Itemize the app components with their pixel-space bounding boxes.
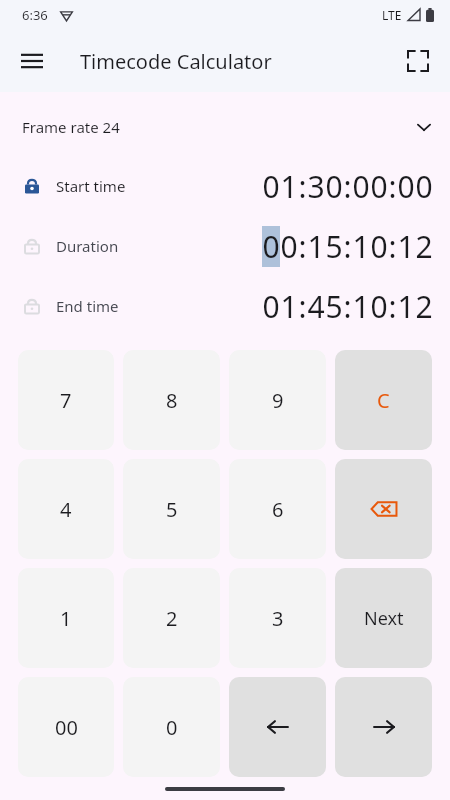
staticText: 0	[370, 286, 388, 327]
staticText: 0	[262, 226, 280, 267]
button[interactable]: 00	[18, 677, 114, 777]
staticText: :	[298, 226, 307, 267]
staticText: :	[343, 286, 352, 327]
staticText: 5	[325, 226, 343, 267]
staticText: 9	[272, 387, 284, 414]
staticText: Start time	[56, 176, 126, 196]
staticText: 0	[415, 166, 433, 207]
staticText: LTE	[382, 7, 402, 23]
staticText: :	[298, 286, 307, 327]
staticText: 1	[307, 226, 325, 267]
staticText: Frame rate 24	[22, 117, 120, 137]
staticText: 0	[397, 166, 415, 207]
staticText: 6	[272, 496, 284, 523]
button[interactable]: 8	[123, 350, 220, 450]
staticText: :	[343, 166, 352, 207]
staticText: 1	[352, 286, 370, 327]
staticText: 1	[60, 605, 72, 632]
button[interactable]: 3	[229, 568, 326, 668]
staticText: Timecode Calculator	[80, 48, 272, 75]
staticText: 5	[325, 286, 343, 327]
button[interactable]: Fullscreen	[394, 37, 442, 85]
button[interactable]: 4	[18, 459, 114, 559]
staticText: 2	[166, 605, 178, 632]
button[interactable]: Backspace	[335, 459, 432, 559]
staticText: 6:36	[22, 6, 48, 24]
button[interactable]: 1	[18, 568, 114, 668]
button[interactable]: Frame rate 24	[0, 110, 450, 144]
staticText: 0	[166, 714, 178, 741]
button[interactable]: Previous field	[229, 677, 326, 777]
button[interactable]: 9	[229, 350, 326, 450]
button[interactable]: Unlocked	[0, 216, 450, 276]
staticText: 5	[166, 496, 178, 523]
staticText: 0	[370, 166, 388, 207]
button[interactable]: 6	[229, 459, 326, 559]
button[interactable]: Menu	[8, 37, 56, 85]
staticText: 1	[397, 286, 415, 327]
staticText: 0	[262, 166, 280, 207]
staticText: 3	[272, 605, 284, 632]
staticText: 1	[397, 226, 415, 267]
staticText: :	[298, 166, 307, 207]
staticText: 4	[307, 286, 325, 327]
other: Locked	[20, 174, 44, 198]
staticText: 00	[55, 714, 78, 741]
staticText: 1	[280, 286, 298, 327]
staticText: Duration	[56, 236, 119, 256]
staticText: 2	[415, 286, 433, 327]
button[interactable]: 2	[123, 568, 220, 668]
other: Unlocked	[20, 234, 44, 258]
button[interactable]: 5	[123, 459, 220, 559]
staticText: :	[388, 286, 397, 327]
staticText: End time	[56, 296, 119, 316]
other: Unlocked	[20, 294, 44, 318]
button[interactable]: Next	[335, 568, 432, 668]
button[interactable]: C	[335, 350, 432, 450]
staticText: :	[388, 226, 397, 267]
staticText: 2	[415, 226, 433, 267]
staticText: 7	[60, 387, 72, 414]
staticText: :	[388, 166, 397, 207]
staticText: 1	[352, 226, 370, 267]
staticText: 8	[166, 387, 178, 414]
button[interactable]: Unlocked	[0, 276, 450, 336]
staticText: Next	[364, 606, 404, 631]
staticText: 0	[280, 226, 298, 267]
staticText: :	[343, 226, 352, 267]
staticText: 3	[307, 166, 325, 207]
staticText: 4	[60, 496, 72, 523]
button[interactable]: 0	[123, 677, 220, 777]
button[interactable]: 7	[18, 350, 114, 450]
staticText: 0	[325, 166, 343, 207]
staticText: 0	[262, 286, 280, 327]
staticText: 0	[352, 166, 370, 207]
staticText: 1	[280, 166, 298, 207]
button[interactable]: Next field	[335, 677, 432, 777]
button[interactable]: Locked	[0, 156, 450, 216]
staticText: 0	[370, 226, 388, 267]
staticText: C	[377, 387, 390, 414]
